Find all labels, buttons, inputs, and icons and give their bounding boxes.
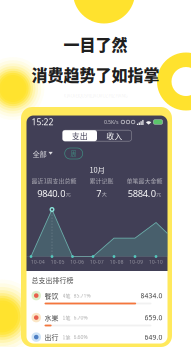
staticText: 10-04	[31, 259, 45, 265]
staticText: 4笔	[62, 292, 70, 299]
staticText: 6.70%	[73, 314, 87, 321]
staticText: 收入	[106, 130, 122, 141]
staticText: 单笔最大金额	[126, 176, 162, 185]
staticText: 元	[66, 190, 71, 197]
staticText: 最近1周支出总额	[31, 176, 76, 185]
staticText: 天	[102, 190, 107, 197]
staticText: 出行	[44, 332, 58, 342]
staticText: 6.60%	[73, 334, 87, 340]
staticText: 10-08	[110, 259, 124, 265]
button[interactable]: 餐饮	[31, 290, 162, 304]
staticText: 支出	[72, 130, 88, 141]
staticText: 10-09	[129, 259, 143, 265]
staticText: 全部	[32, 148, 46, 159]
staticText: 1笔	[62, 314, 70, 321]
staticText: 85.71%	[73, 292, 90, 299]
staticText: 周	[70, 149, 77, 158]
staticText: 8434.0	[140, 291, 162, 300]
staticText: 一目了然	[63, 32, 127, 56]
staticText: 消费趋势了如指掌	[31, 63, 159, 86]
staticText: 10-10	[149, 259, 163, 265]
staticText: 10-06	[70, 259, 84, 265]
staticText: 总支出排行榜	[31, 275, 73, 285]
staticText: 餐饮	[44, 291, 58, 301]
staticText: 元	[156, 190, 161, 197]
button[interactable]: 出行	[31, 332, 162, 346]
staticText: 5884.0	[128, 187, 156, 200]
staticText: 0.5K/s	[104, 118, 119, 126]
staticText: 累计记账	[89, 176, 113, 185]
staticText: 649.0	[144, 333, 162, 342]
staticText: 10-07	[90, 259, 104, 265]
button[interactable]: 全部	[32, 148, 53, 159]
staticText: 1笔	[62, 333, 70, 341]
staticText: 15:22	[31, 116, 53, 128]
staticText: 10月	[89, 164, 104, 175]
button[interactable]: 周	[65, 148, 83, 159]
button[interactable]: 水果	[31, 312, 162, 326]
staticText: 659.0	[144, 313, 162, 322]
staticText: 9840.0	[37, 187, 65, 200]
button[interactable]: 支出	[62, 130, 97, 141]
staticText: 水果	[44, 313, 58, 323]
button[interactable]: 收入	[97, 130, 131, 141]
staticText: 10-05	[51, 259, 65, 265]
staticText: 7	[96, 187, 101, 200]
